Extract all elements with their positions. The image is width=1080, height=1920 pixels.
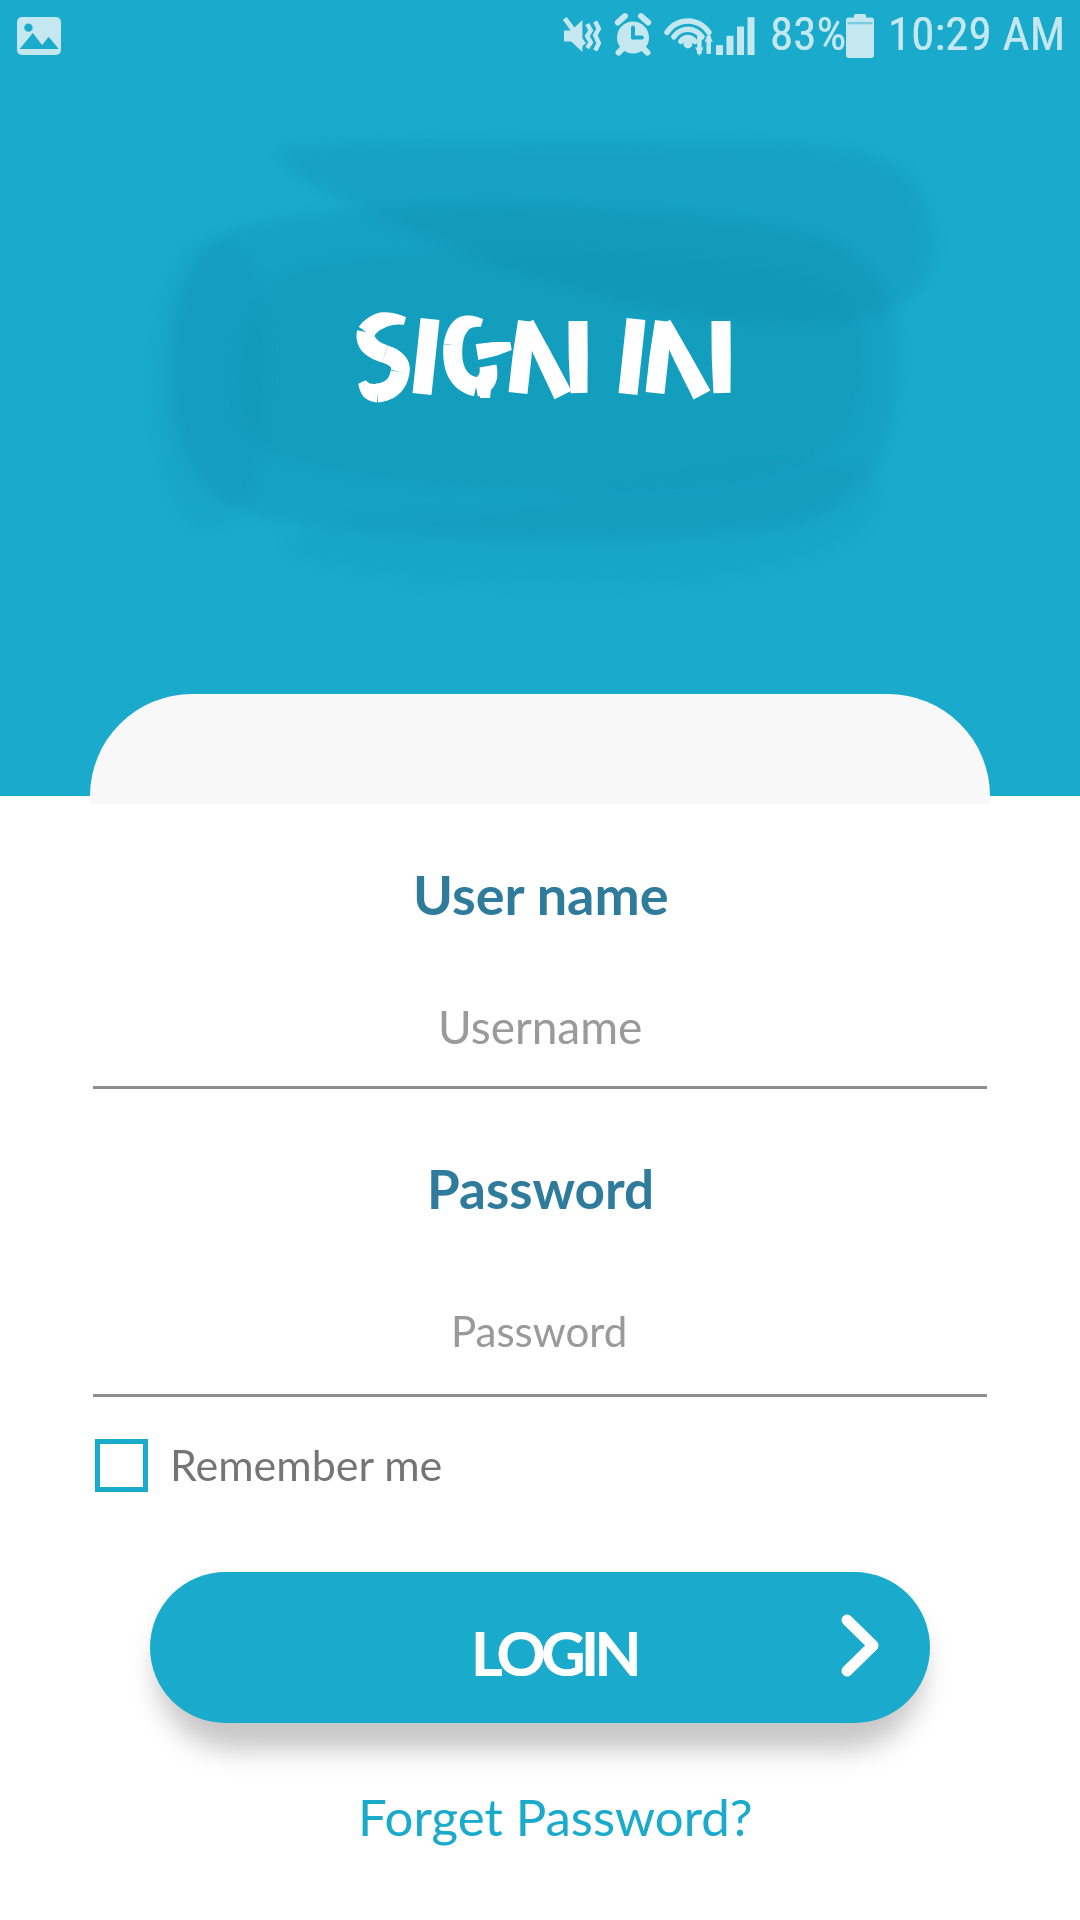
staticText: Forget Password? bbox=[358, 1786, 753, 1847]
staticText: Remember me bbox=[170, 1439, 443, 1491]
button[interactable]: LOGIN bbox=[150, 1572, 930, 1723]
staticText: User name bbox=[413, 862, 669, 927]
staticText: 83% bbox=[770, 6, 847, 61]
other: SIGN IN bbox=[353, 309, 735, 409]
button[interactable]: Remember me bbox=[95, 1437, 443, 1493]
staticText: Username bbox=[438, 999, 643, 1054]
staticText: LOGIN bbox=[471, 1616, 637, 1689]
staticText: Password bbox=[451, 1306, 628, 1356]
staticText: Password bbox=[427, 1157, 655, 1221]
button[interactable]: Forget Password? bbox=[346, 1780, 765, 1853]
staticText: 10:29 AM bbox=[888, 6, 1066, 61]
